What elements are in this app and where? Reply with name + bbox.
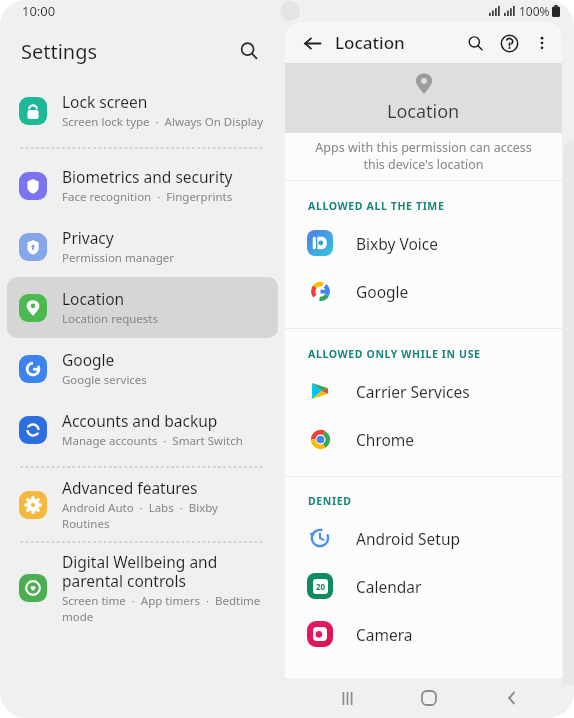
button[interactable]: Bixby Voice (285, 219, 562, 267)
button[interactable]: Recents (327, 678, 367, 718)
staticText: Google (356, 281, 409, 302)
staticText: Digital Wellbeing and parental controls (62, 551, 267, 591)
staticText: 10:00 (22, 2, 56, 20)
staticText: Chrome (356, 429, 415, 450)
button[interactable]: Digital Wellbeing and parental controls (7, 549, 278, 627)
button[interactable]: Home (409, 678, 449, 718)
staticText: Apps with this permission can access thi… (311, 139, 536, 173)
button[interactable]: Google (7, 338, 278, 399)
button[interactable]: Privacy (7, 216, 278, 277)
staticText: Location (387, 99, 460, 124)
staticText: Screen lock type · Always On Display (62, 114, 264, 130)
staticText: Settings (21, 38, 98, 65)
staticText: Accounts and backup (62, 410, 218, 431)
button[interactable]: Lock screen (7, 80, 278, 141)
staticText: Advanced features (62, 477, 198, 498)
staticText: Bixby Voice (356, 233, 438, 254)
button[interactable]: More options (526, 27, 558, 59)
button[interactable]: Accounts and backup (7, 399, 278, 460)
button[interactable]: Chrome (285, 415, 562, 463)
button[interactable]: Biometrics and security (7, 155, 278, 216)
staticText: Privacy (62, 227, 114, 248)
staticText: Face recognition · Fingerprints (62, 189, 233, 205)
button[interactable]: Google (285, 267, 562, 315)
button[interactable]: Back (492, 678, 532, 718)
staticText: Biometrics and security (62, 166, 233, 187)
button[interactable]: Navigate up (295, 26, 329, 60)
button[interactable]: Advanced features (7, 474, 278, 535)
button[interactable]: Camera (285, 610, 562, 658)
staticText: 100% (519, 3, 550, 19)
staticText: Android Setup (356, 528, 461, 549)
staticText: Permission manager (62, 250, 175, 266)
button[interactable]: Search (458, 26, 492, 60)
staticText: Carrier Services (356, 381, 470, 402)
staticText: Location (335, 31, 405, 54)
staticText: ALLOWED ALL THE TIME (308, 199, 445, 213)
button[interactable]: Location (7, 277, 278, 338)
staticText: DENIED (308, 494, 352, 508)
staticText: Manage accounts · Smart Switch (62, 433, 243, 449)
staticText: Location requests (62, 311, 158, 327)
staticText: Calendar (356, 576, 422, 597)
button[interactable]: 20 (285, 562, 562, 610)
button[interactable]: Carrier Services (285, 367, 562, 415)
staticText: Location (62, 288, 125, 309)
staticText: Lock screen (62, 91, 148, 112)
staticText: Camera (356, 624, 413, 645)
button[interactable]: Android Setup (285, 514, 562, 562)
staticText: Google services (62, 372, 147, 388)
staticText: 20 (316, 581, 326, 592)
button[interactable]: Help (492, 26, 526, 60)
staticText: ALLOWED ONLY WHILE IN USE (308, 347, 481, 361)
button[interactable]: Search settings (229, 31, 269, 71)
staticText: Android Auto · Labs · Bixby Routines (62, 500, 267, 532)
staticText: Google (62, 349, 115, 370)
staticText: Screen time · App timers · Bedtime mode (62, 593, 267, 625)
